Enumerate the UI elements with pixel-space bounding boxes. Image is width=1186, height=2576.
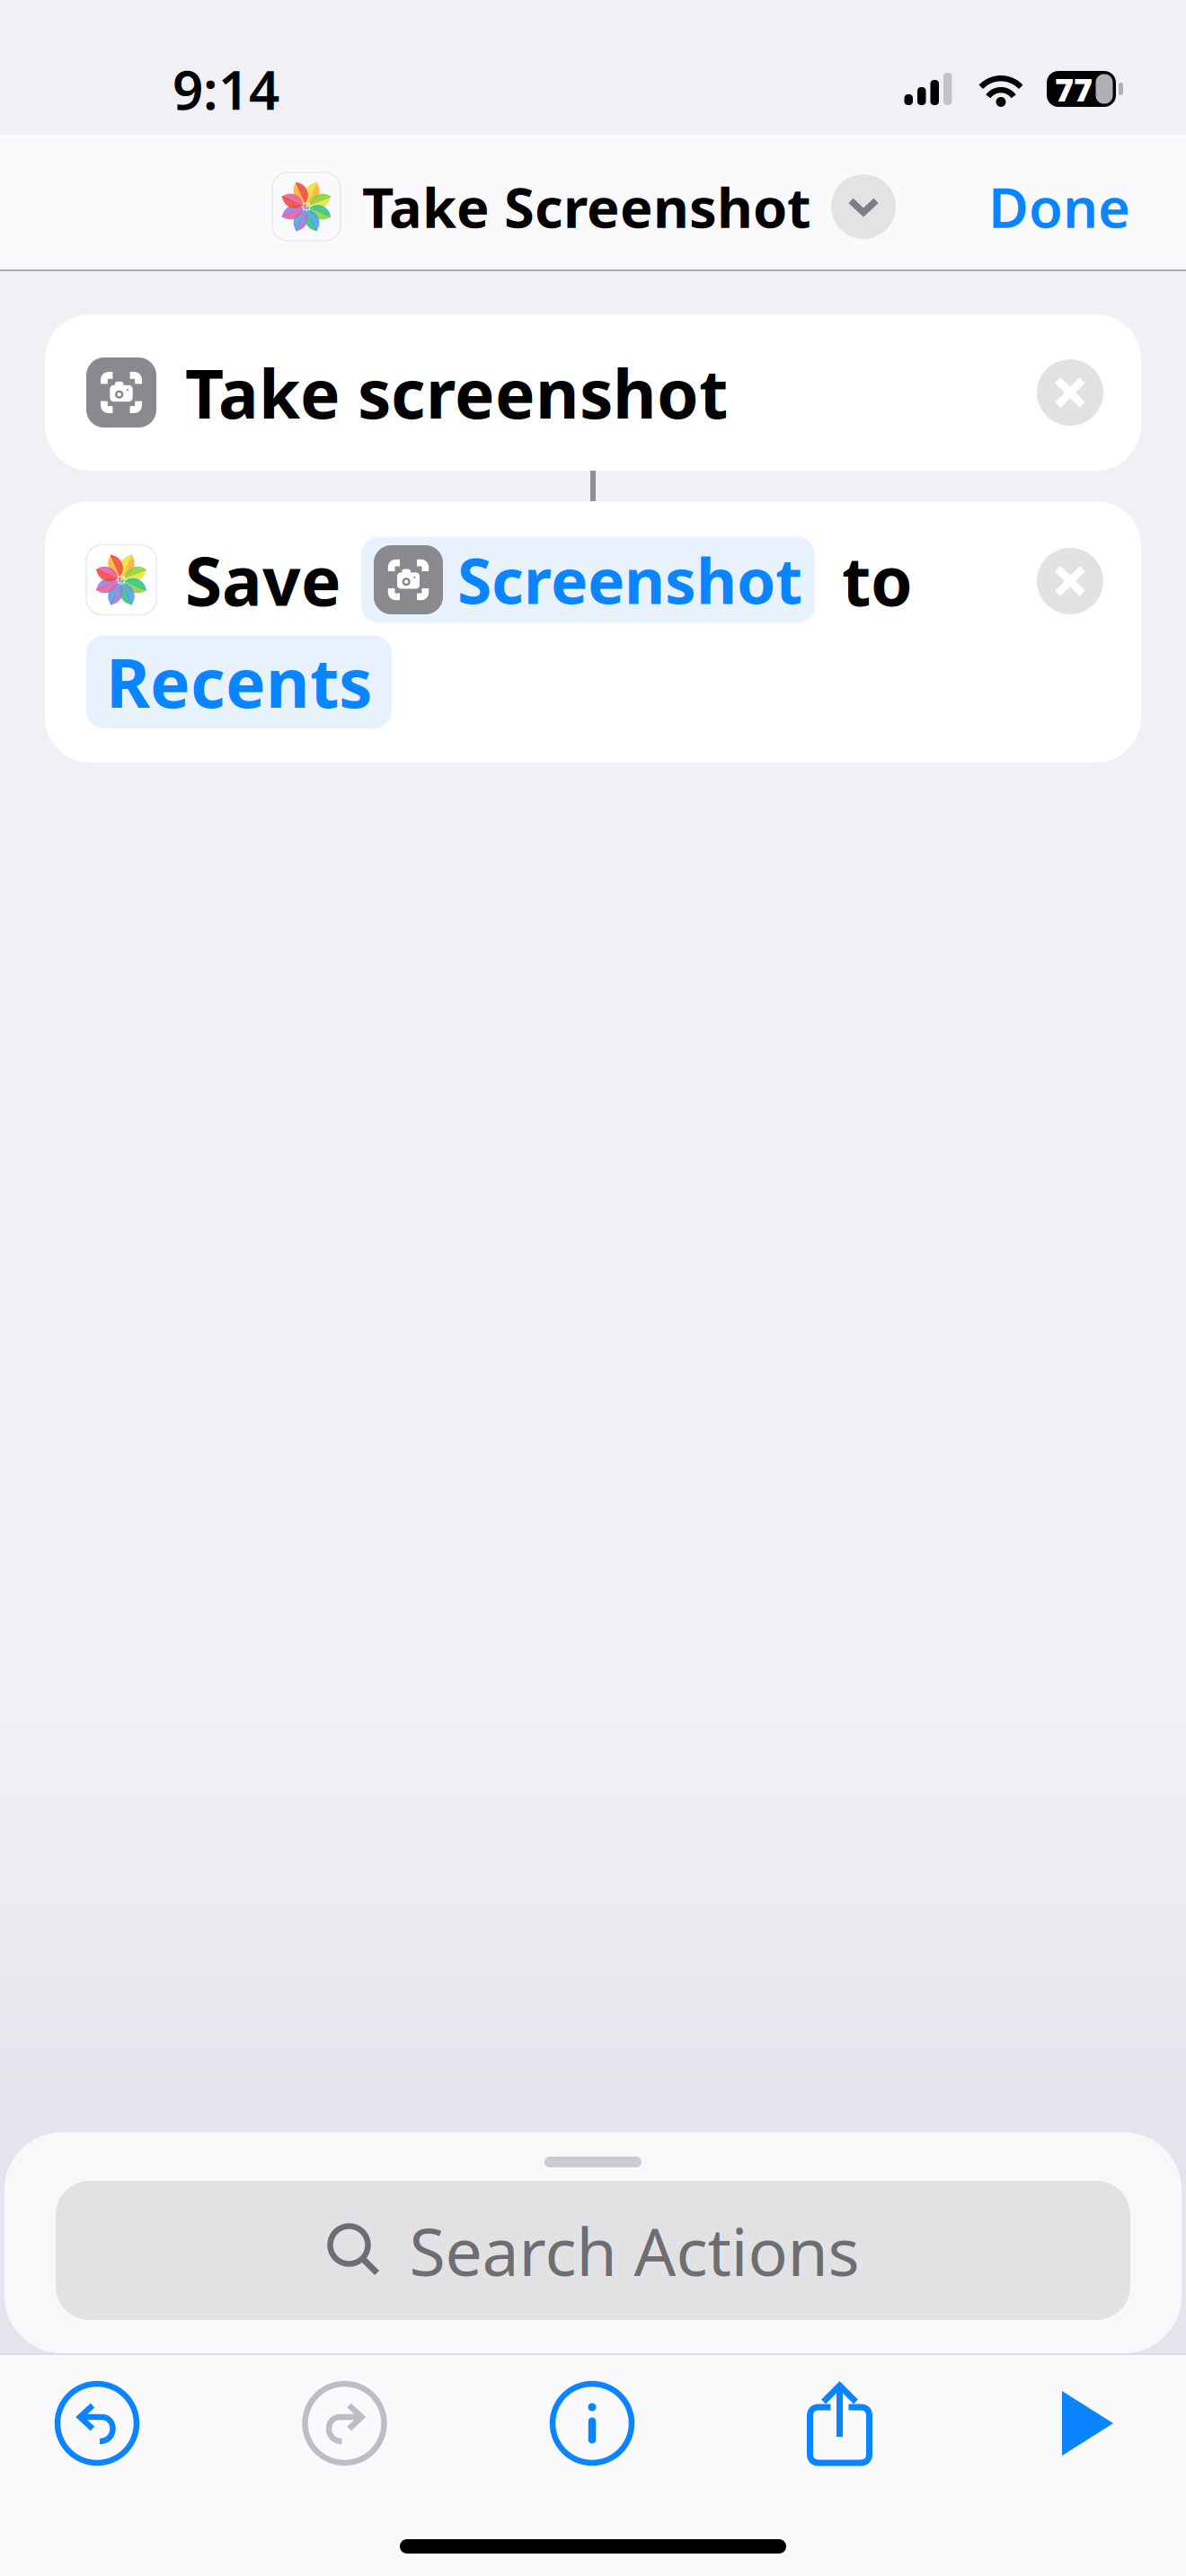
button[interactable]: Share: [761, 2355, 919, 2492]
button[interactable]: Shortcut details: [513, 2355, 671, 2492]
button[interactable]: Redo: [266, 2355, 424, 2492]
button[interactable]: Run shortcut: [1008, 2355, 1166, 2492]
staticText: Recents: [106, 637, 372, 726]
button[interactable]: Save: [0, 501, 1186, 763]
button[interactable]: Search Actions: [4, 2167, 1182, 2353]
staticText: 9:14: [173, 53, 279, 125]
staticText: to: [842, 535, 913, 624]
button[interactable]: Take screenshot: [0, 271, 1186, 471]
staticText: Take Screenshot: [362, 170, 811, 243]
staticText: Screenshot: [457, 538, 802, 621]
button[interactable]: Undo: [18, 2355, 176, 2492]
staticText: Take screenshot: [185, 348, 728, 437]
staticText: 77: [1055, 67, 1093, 110]
staticText: Save: [185, 535, 341, 624]
button[interactable]: Take Screenshot: [272, 161, 896, 252]
staticText: Search Actions: [409, 2207, 859, 2294]
staticText: Done: [988, 170, 1130, 243]
button[interactable]: Done: [970, 156, 1148, 258]
